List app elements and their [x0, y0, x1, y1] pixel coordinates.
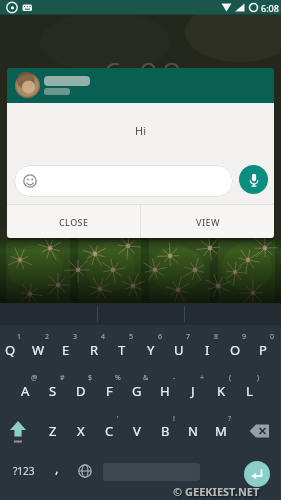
staticText: Hi — [135, 123, 146, 138]
button[interactable]: X — [67, 413, 95, 449]
button[interactable]: P — [249, 332, 277, 368]
button[interactable]: A — [11, 373, 39, 409]
button[interactable]: VIEW — [141, 205, 274, 238]
staticText: X — [77, 422, 85, 440]
staticText: O — [230, 341, 241, 359]
staticText: & — [143, 373, 149, 383]
button[interactable]: I — [193, 332, 221, 368]
staticText: 9 — [242, 332, 247, 342]
staticText: 2 — [45, 332, 50, 342]
button[interactable]: CLOSE — [7, 205, 140, 238]
staticText: B — [161, 422, 170, 440]
staticText: ! — [173, 414, 175, 424]
staticText: P — [259, 341, 267, 359]
button[interactable]: , — [43, 450, 71, 486]
staticText: F — [106, 382, 113, 400]
button[interactable]: F — [95, 373, 123, 409]
staticText: 3 — [73, 332, 78, 342]
button[interactable]: W — [24, 332, 52, 368]
staticText: , — [55, 459, 59, 477]
button[interactable]: Q — [0, 332, 24, 368]
button[interactable]: Z — [39, 413, 67, 449]
button[interactable] — [7, 68, 274, 103]
button[interactable]: O — [221, 332, 249, 368]
button[interactable] — [246, 413, 278, 449]
button[interactable]: Y — [137, 332, 165, 368]
staticText: Y — [147, 341, 155, 359]
staticText: 0 — [270, 332, 275, 342]
staticText: + — [200, 373, 205, 383]
button[interactable]: ?123 — [4, 453, 44, 489]
button[interactable]: N — [179, 413, 207, 449]
staticText: ( — [229, 373, 232, 383]
staticText: 7 — [186, 332, 191, 342]
button[interactable]: D — [67, 373, 95, 409]
staticText: A — [21, 382, 30, 400]
button[interactable]: U — [165, 332, 193, 368]
staticText: ?123 — [13, 464, 35, 478]
staticText: VIEW — [196, 216, 220, 228]
staticText: ) — [257, 373, 260, 383]
button[interactable] — [4, 413, 32, 449]
staticText: 8 — [214, 332, 219, 342]
staticText: G — [132, 382, 142, 400]
staticText: S — [49, 382, 57, 400]
button[interactable]: R — [80, 332, 108, 368]
staticText: V — [133, 422, 141, 440]
staticText: CLOSE — [59, 216, 89, 228]
button[interactable]: G — [123, 373, 151, 409]
button[interactable]: K — [207, 373, 235, 409]
staticText: W — [32, 341, 45, 359]
button[interactable]: B — [151, 413, 179, 449]
staticText: 6 — [158, 332, 163, 342]
staticText: Z — [49, 422, 57, 440]
staticText: Q — [5, 341, 16, 359]
button[interactable]: M — [207, 413, 235, 449]
staticText: 5 — [129, 332, 134, 342]
staticText: 6:08 — [103, 52, 186, 98]
staticText: H — [160, 382, 170, 400]
staticText: T — [118, 341, 126, 359]
staticText: K — [217, 382, 226, 400]
staticText: M — [215, 422, 227, 440]
staticText: N — [188, 422, 198, 440]
button[interactable]: T — [108, 332, 136, 368]
button[interactable]: E — [52, 332, 80, 368]
button[interactable]: S — [39, 373, 67, 409]
staticText: ? — [228, 414, 232, 424]
staticText: 1 — [17, 332, 22, 342]
staticText: # — [60, 373, 65, 383]
staticText: @ — [31, 373, 38, 383]
staticText: L — [246, 382, 253, 400]
button[interactable]: J — [179, 373, 207, 409]
staticText: ' — [117, 414, 119, 424]
staticText: © GEEKIEST.NET — [173, 484, 260, 499]
staticText: I — [205, 341, 210, 359]
button[interactable]: V — [123, 413, 151, 449]
staticText: E — [62, 341, 70, 359]
button[interactable] — [14, 165, 233, 197]
staticText: D — [76, 382, 86, 400]
staticText: - — [173, 373, 176, 383]
button[interactable]: C — [95, 413, 123, 449]
button[interactable]: L — [235, 373, 263, 409]
staticText: % — [115, 373, 121, 383]
staticText: R — [90, 341, 99, 359]
button[interactable] — [71, 456, 99, 488]
button[interactable]: H — [151, 373, 179, 409]
staticText: $ — [88, 373, 93, 383]
staticText: 4 — [101, 332, 106, 342]
button[interactable] — [239, 165, 268, 194]
staticText: 6:08 — [261, 2, 279, 14]
staticText: C — [105, 422, 114, 440]
staticText: U — [174, 341, 184, 359]
staticText: J — [191, 382, 195, 400]
button[interactable] — [244, 461, 270, 487]
